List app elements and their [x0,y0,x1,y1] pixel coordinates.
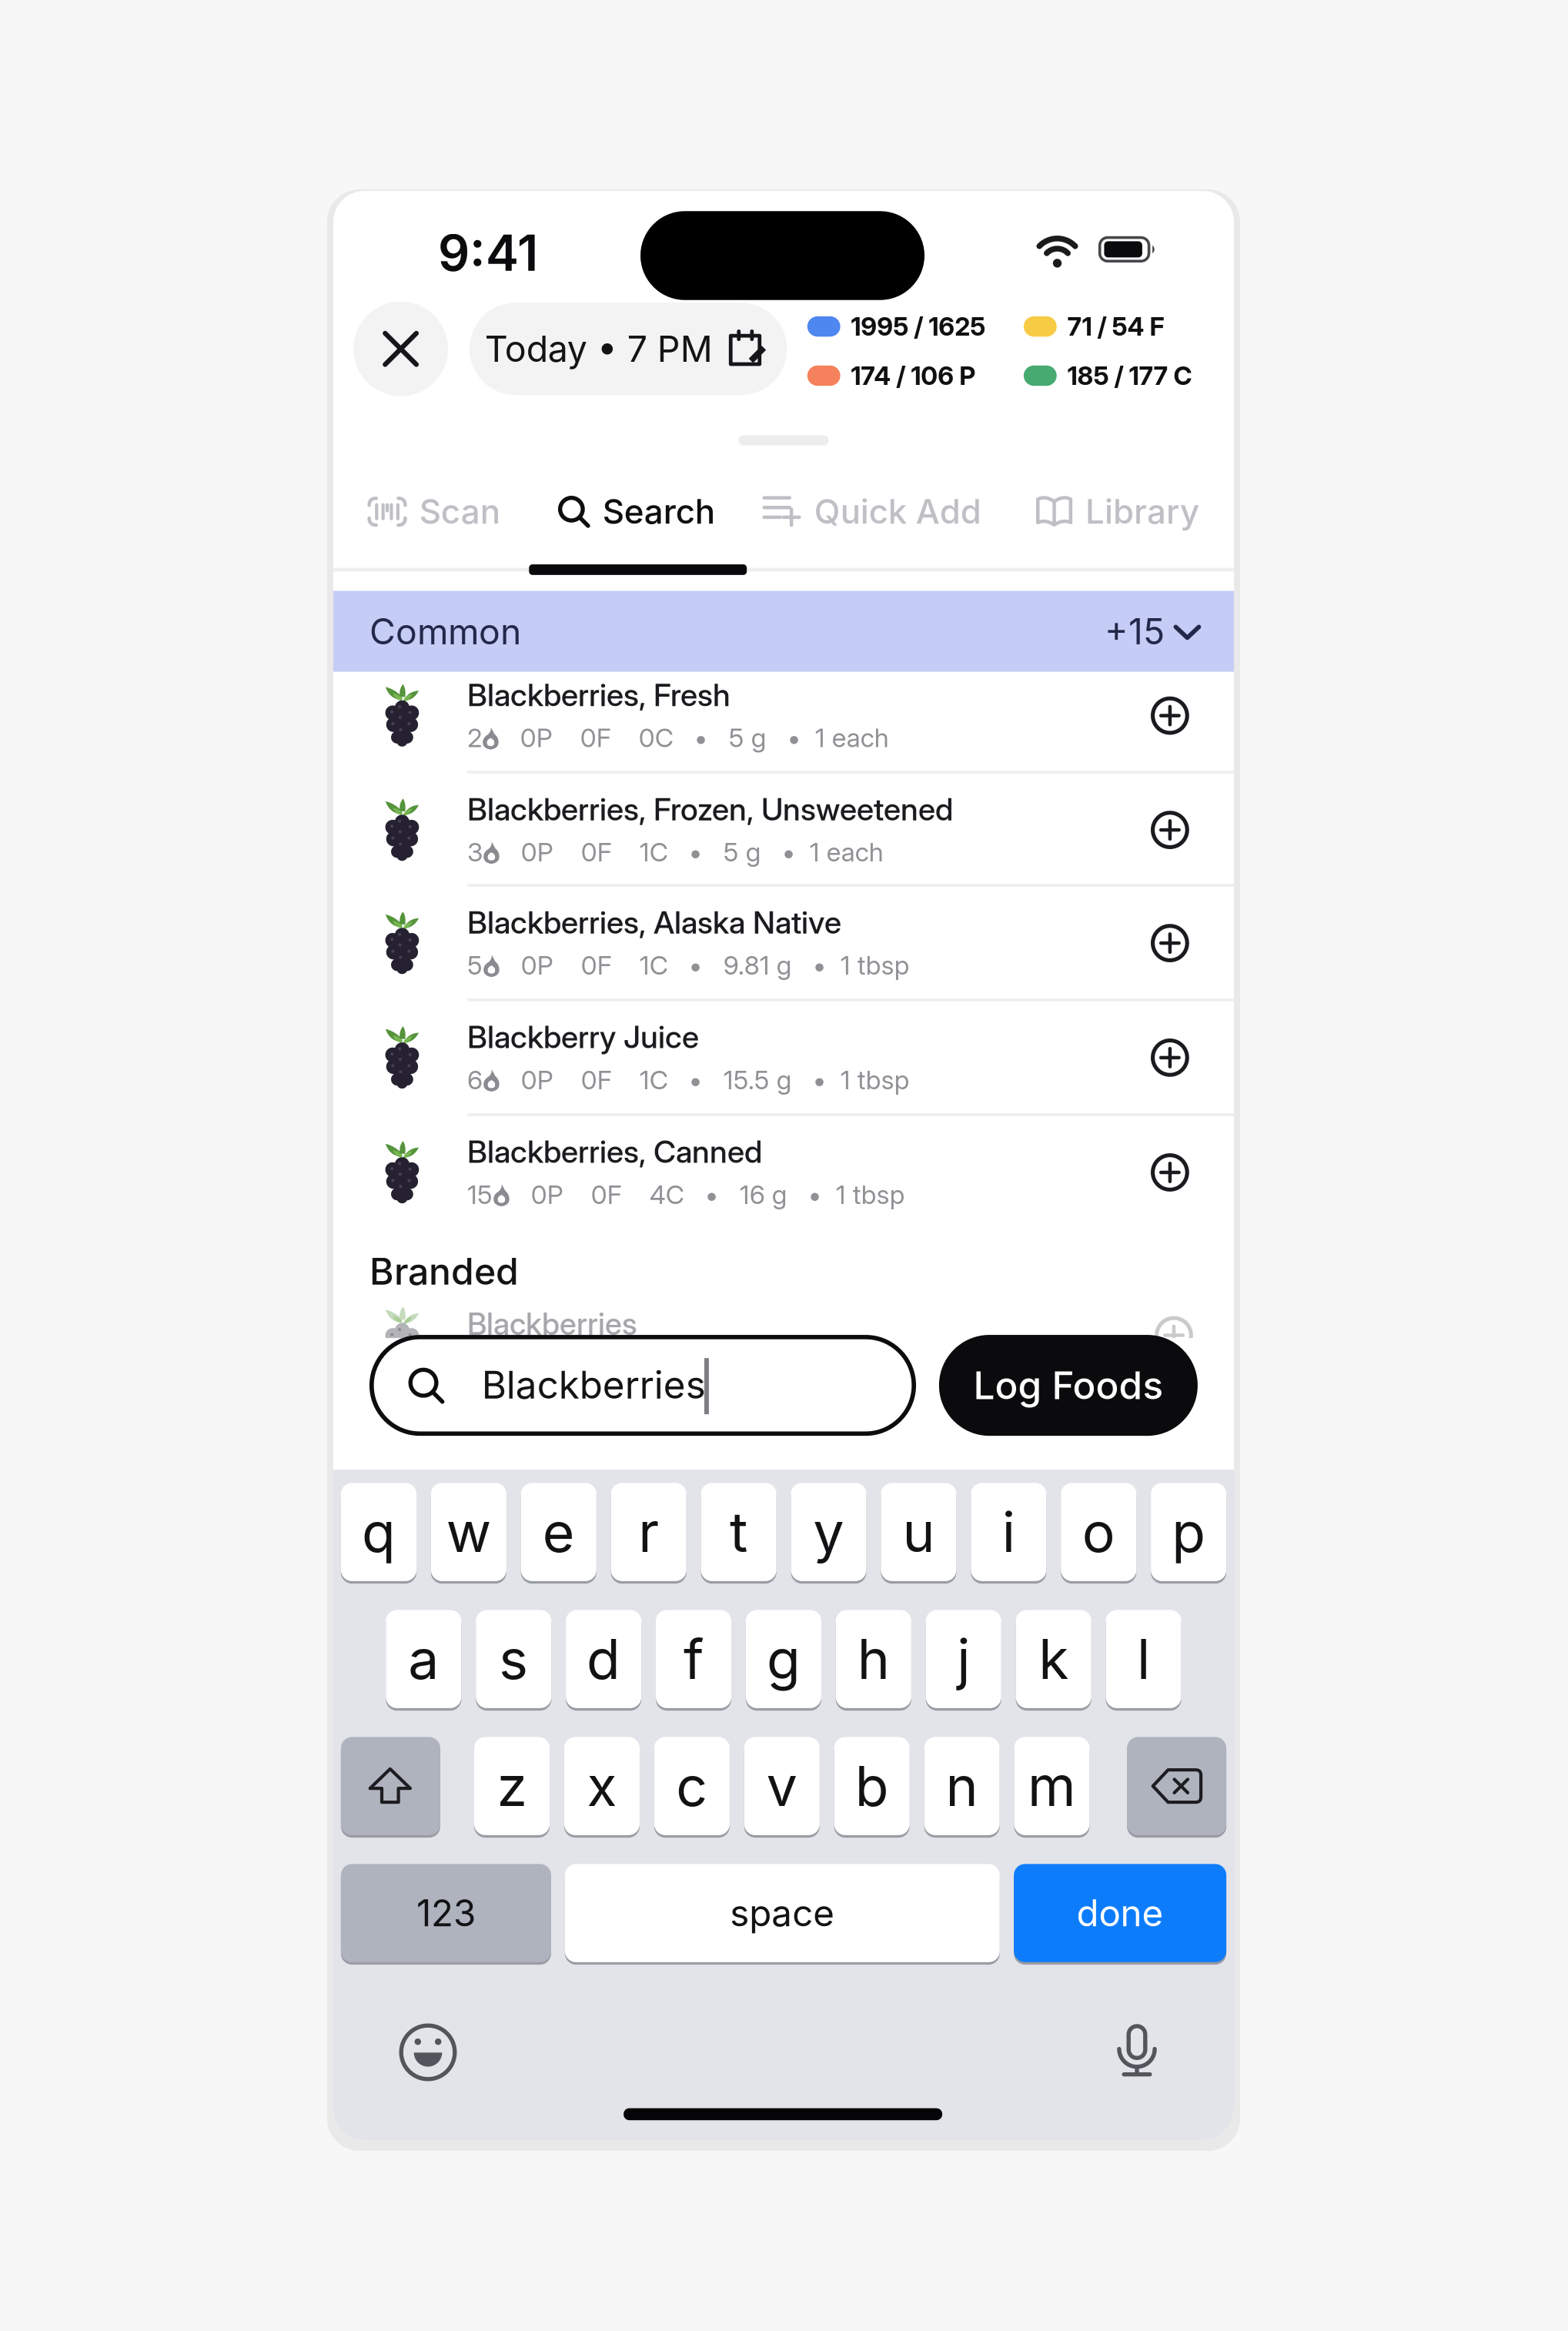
staticText: Search [603,491,715,532]
staticText: Blackberries, Fresh [467,676,731,714]
staticText: c [676,1753,708,1819]
button[interactable]: p [1151,1481,1226,1583]
staticText: 5 [467,950,483,981]
button[interactable]: Log Blackberries, Canned [1151,1153,1189,1192]
button[interactable]: s [476,1608,551,1710]
staticText: 0P 0F 1C • 5 g • 1 each [500,836,884,868]
button[interactable]: Log Foods [939,1335,1198,1436]
button[interactable]: g [746,1608,821,1710]
staticText: 3 [467,836,483,868]
staticText: 123 [416,1891,476,1935]
button[interactable]: Scan [367,491,500,532]
button[interactable]: Log Blackberry Juice [1151,1038,1189,1077]
staticText: d [587,1626,621,1692]
staticText: b [855,1753,889,1819]
staticText: 71 / 54 F [1067,311,1164,342]
button[interactable] [333,658,1234,772]
staticText: 0P 0F 1C • 9.81 g • 1 tbsp [500,950,910,981]
button[interactable]: o [1061,1481,1136,1583]
staticText: Blackberries [467,1305,637,1342]
button[interactable]: w [431,1481,506,1583]
staticText: u [902,1499,935,1565]
button[interactable]: q [341,1481,416,1583]
staticText: Blackberries [482,1362,706,1408]
staticText: o [1082,1499,1115,1565]
button[interactable]: Search foods [369,1335,916,1436]
button[interactable]: e [521,1481,596,1583]
button[interactable] [333,885,1234,1000]
button[interactable]: Dictate [1112,2024,1162,2076]
staticText: m [1028,1753,1076,1819]
staticText: w [446,1499,491,1565]
staticText: 15 [467,1179,493,1210]
button[interactable]: n [924,1735,1000,1837]
staticText: z [497,1753,527,1819]
staticText: s [499,1626,528,1692]
button[interactable]: l [1106,1608,1181,1710]
staticText: Today • 7 PM [485,327,713,371]
staticText: i [1002,1499,1015,1565]
button[interactable]: x [564,1735,640,1837]
button[interactable]: b [834,1735,910,1837]
button[interactable]: h [836,1608,911,1710]
button[interactable]: 123 [341,1862,551,1964]
button[interactable]: k [1016,1608,1091,1710]
button[interactable]: Log Blackberries, Frozen, Unsweetened [1151,811,1189,849]
staticText: 0P 0F 1C • 15.5 g • 1 tbsp [500,1064,910,1096]
button[interactable]: u [881,1481,956,1583]
staticText: q [362,1499,396,1565]
button[interactable]: m [1014,1735,1090,1837]
button[interactable]: Emoji [399,2023,457,2081]
staticText: 174 / 106 P [851,360,976,391]
button[interactable]: Search [558,491,715,532]
button[interactable]: Close [353,302,448,396]
button[interactable]: Log Blackberries, Fresh [1151,696,1189,735]
button[interactable]: Today • 7 PM [469,303,787,395]
staticText: 185 / 177 C [1067,360,1192,391]
staticText: Common [370,610,521,653]
staticText: 1995 / 1625 [851,311,986,342]
button[interactable] [333,1000,1234,1114]
button[interactable]: y [791,1481,866,1583]
button[interactable]: space [565,1862,1000,1964]
button[interactable]: c [654,1735,730,1837]
staticText: Blackberry Juice [467,1018,699,1056]
button[interactable]: Log Blackberries, Alaska Native [1151,924,1189,962]
button[interactable]: Delete [1127,1735,1226,1837]
staticText: k [1039,1626,1069,1692]
button[interactable]: f [656,1608,731,1710]
staticText: space [730,1891,835,1935]
button[interactable] [333,772,1234,887]
staticText: a [408,1626,439,1692]
button[interactable]: a [386,1608,461,1710]
staticText: 0P 0F 0C • 5 g • 1 each [499,722,889,753]
button[interactable]: i [971,1481,1046,1583]
button[interactable]: j [926,1608,1001,1710]
staticText: Blackberries, Canned [467,1133,762,1170]
button[interactable]: z [474,1735,550,1837]
button[interactable]: t [701,1481,776,1583]
staticText: Blackberries, Frozen, Unsweetened [467,790,953,828]
staticText: Log Foods [973,1362,1163,1408]
staticText: p [1172,1499,1206,1565]
button[interactable]: v [744,1735,820,1837]
staticText: Branded [370,1249,519,1294]
staticText: x [587,1753,617,1819]
staticText: 6 [467,1064,483,1096]
button[interactable]: r [611,1481,686,1583]
button[interactable]: done [1014,1862,1226,1964]
staticText: g [767,1626,800,1692]
button[interactable]: Quick Add [762,491,981,532]
button[interactable]: Shift [341,1735,440,1837]
button[interactable]: Library [1036,491,1199,532]
staticText: f [684,1626,704,1692]
button[interactable]: d [566,1608,641,1710]
button[interactable]: Common [333,591,1234,672]
button[interactable] [333,1115,1234,1229]
staticText: l [1137,1626,1150,1692]
staticText: 9:41 [438,223,538,283]
staticText: h [857,1626,890,1692]
staticText: Quick Add [814,491,981,532]
staticText: j [957,1626,970,1692]
staticText: y [813,1499,844,1565]
